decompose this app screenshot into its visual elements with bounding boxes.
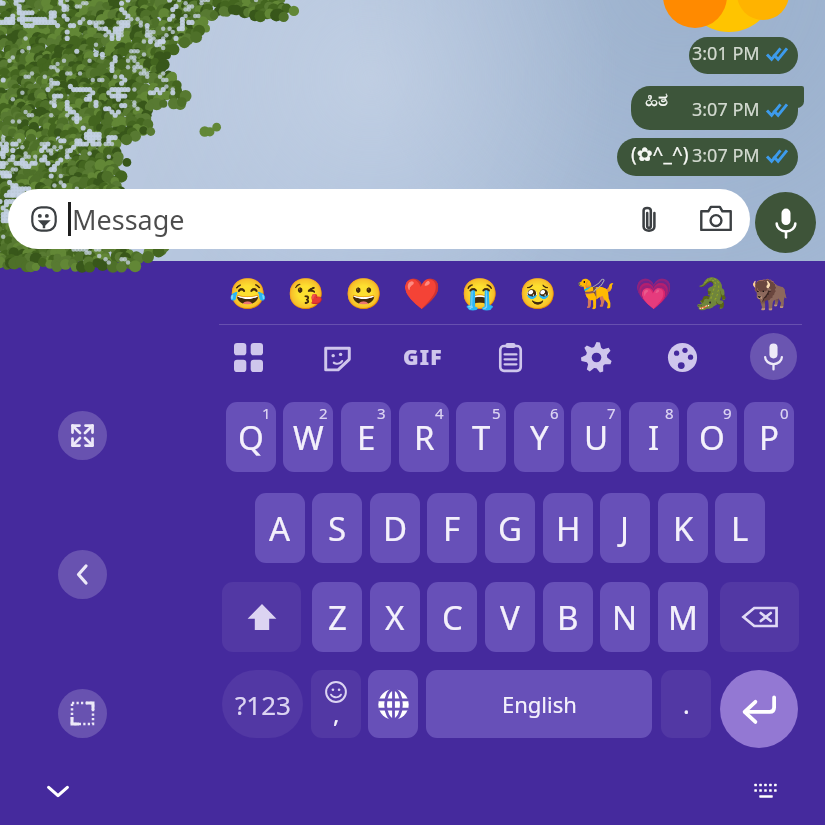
- button[interactable]: .: [661, 670, 711, 738]
- button[interactable]: 🦮: [570, 264, 622, 322]
- button[interactable]: 🦬: [744, 264, 796, 322]
- staticText: H: [556, 506, 581, 551]
- staticText: 3: [377, 403, 386, 423]
- staticText: 3:01 PM: [692, 41, 760, 66]
- button[interactable]: H: [543, 493, 593, 563]
- staticText: ❤️: [403, 276, 441, 311]
- button[interactable]: 9: [687, 402, 737, 472]
- button[interactable]: 0: [744, 402, 794, 472]
- button[interactable]: L: [715, 493, 765, 563]
- button[interactable]: 7: [571, 402, 621, 472]
- button[interactable]: K: [658, 493, 708, 563]
- button[interactable]: GIF: [399, 333, 447, 381]
- staticText: 4: [435, 403, 444, 423]
- staticText: Message: [72, 201, 185, 238]
- staticText: N: [612, 595, 638, 640]
- button[interactable]: 3:07 PM: [617, 138, 798, 176]
- button[interactable]: 2: [283, 402, 333, 472]
- staticText: V: [500, 595, 520, 640]
- staticText: 😭: [461, 276, 499, 311]
- button[interactable]: ?123: [222, 670, 303, 738]
- staticText: 9: [723, 403, 732, 423]
- staticText: G: [498, 506, 523, 551]
- button[interactable]: Settings: [572, 333, 620, 381]
- staticText: F: [443, 506, 461, 551]
- button[interactable]: Emoji and comma: [311, 670, 361, 738]
- staticText: M: [668, 595, 698, 640]
- button[interactable]: 1: [226, 402, 276, 472]
- button[interactable]: N: [600, 582, 650, 652]
- staticText: I: [648, 415, 660, 460]
- button[interactable]: Resize keyboard: [58, 411, 107, 460]
- button[interactable]: 🥹: [512, 264, 564, 322]
- button[interactable]: English: [426, 670, 652, 738]
- button[interactable]: S: [312, 493, 362, 563]
- staticText: U: [584, 415, 609, 460]
- staticText: 🐊: [693, 276, 731, 311]
- button[interactable]: G: [485, 493, 535, 563]
- staticText: 😘: [287, 276, 325, 311]
- button[interactable]: Themes: [658, 333, 706, 381]
- button[interactable]: Hide keyboard: [35, 768, 81, 814]
- button[interactable]: 4: [399, 402, 449, 472]
- staticText: 6: [550, 403, 559, 423]
- staticText: 0: [780, 403, 789, 423]
- button[interactable]: One-handed mode: [58, 689, 107, 738]
- button[interactable]: 5: [456, 402, 506, 472]
- button[interactable]: Switch keyboard: [743, 768, 789, 814]
- button[interactable]: Message: [8, 189, 750, 249]
- button[interactable]: Z: [312, 582, 362, 652]
- staticText: D: [383, 506, 408, 551]
- staticText: 3:07 PM: [692, 97, 760, 122]
- button[interactable]: Change language: [368, 670, 418, 738]
- staticText: Y: [530, 415, 549, 460]
- staticText: L: [731, 506, 749, 551]
- button[interactable]: 😀: [338, 264, 390, 322]
- button[interactable]: Attach: [626, 196, 672, 242]
- staticText: 🦬: [751, 276, 789, 311]
- button[interactable]: 🐊: [686, 264, 738, 322]
- button[interactable]: V: [485, 582, 535, 652]
- button[interactable]: Apps: [224, 333, 272, 381]
- staticText: J: [620, 506, 630, 551]
- button[interactable]: Previous: [58, 550, 107, 599]
- button[interactable]: 😘: [280, 264, 332, 322]
- button[interactable]: Enter: [720, 670, 798, 748]
- staticText: 😂: [229, 276, 267, 311]
- button[interactable]: J: [600, 493, 650, 563]
- staticText: 🥹: [519, 276, 557, 311]
- button[interactable]: Backspace: [720, 582, 799, 652]
- button[interactable]: Shift: [222, 582, 301, 652]
- button[interactable]: Voice input: [750, 333, 797, 380]
- button[interactable]: 😂: [222, 264, 274, 322]
- button[interactable]: B: [543, 582, 593, 652]
- button[interactable]: 8: [629, 402, 679, 472]
- button[interactable]: Stickers: [313, 333, 361, 381]
- staticText: Z: [328, 595, 347, 640]
- staticText: ?123: [235, 687, 291, 722]
- staticText: 7: [607, 403, 616, 423]
- button[interactable]: 6: [514, 402, 564, 472]
- staticText: B: [557, 595, 579, 640]
- button[interactable]: A: [255, 493, 305, 563]
- button[interactable]: 3:01 PM: [689, 37, 798, 74]
- staticText: O: [699, 415, 725, 460]
- button[interactable]: Clipboard: [486, 333, 534, 381]
- button[interactable]: 3: [341, 402, 391, 472]
- button[interactable]: Record voice message: [755, 192, 816, 253]
- staticText: 😀: [345, 276, 383, 311]
- button[interactable]: X: [370, 582, 420, 652]
- button[interactable]: 💗: [628, 264, 680, 322]
- button[interactable]: C: [427, 582, 477, 652]
- staticText: Q: [238, 415, 264, 460]
- staticText: GIF: [403, 343, 443, 372]
- button[interactable]: M: [658, 582, 708, 652]
- button[interactable]: Camera: [693, 196, 739, 242]
- staticText: P: [759, 415, 779, 460]
- button[interactable]: ❤️: [396, 264, 448, 322]
- button[interactable]: D: [370, 493, 420, 563]
- button[interactable]: F: [427, 493, 477, 563]
- button[interactable]: 😭: [454, 264, 506, 322]
- staticText: 💗: [635, 276, 673, 311]
- button[interactable]: 3:07 PM: [631, 86, 798, 130]
